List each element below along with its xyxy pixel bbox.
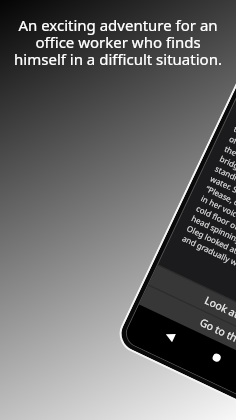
- button[interactable]: Home: [203, 344, 230, 371]
- staticText: The evening was cold and the streets wer…: [181, 103, 236, 317]
- button[interactable]: Go to the shop: [139, 284, 236, 389]
- staticText: Look at the body: [202, 293, 236, 341]
- button[interactable]: Look at the body: [148, 265, 236, 369]
- staticText: Go to the shop: [198, 315, 236, 359]
- button[interactable]: Back: [156, 322, 183, 349]
- staticText: An exciting adventure for an office work…: [0, 15, 236, 70]
